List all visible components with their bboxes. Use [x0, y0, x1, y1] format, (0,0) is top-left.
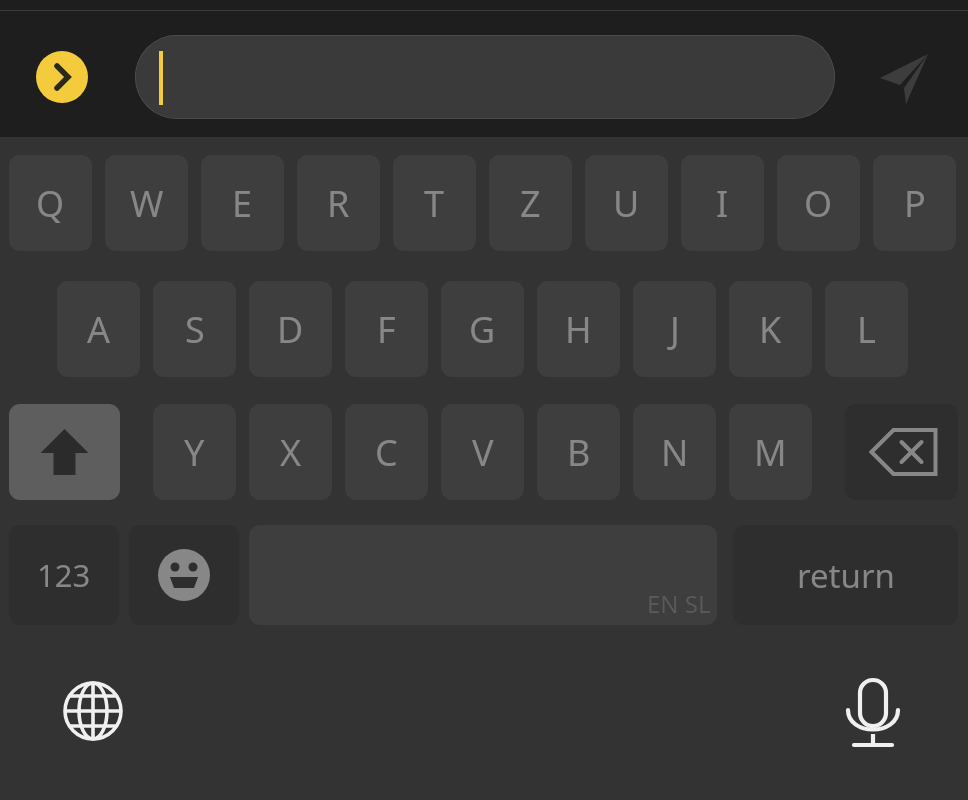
- button[interactable]: B: [537, 404, 620, 500]
- button[interactable]: Send: [866, 48, 942, 108]
- button[interactable]: Shift: [9, 404, 120, 500]
- button[interactable]: J: [633, 281, 716, 377]
- staticText: 123: [37, 554, 91, 596]
- button[interactable]: L: [825, 281, 908, 377]
- staticText: G: [469, 305, 496, 354]
- staticText: EN SL: [647, 587, 711, 620]
- staticText: E: [232, 179, 253, 228]
- button[interactable]: P: [873, 155, 956, 251]
- staticText: L: [857, 305, 876, 354]
- button[interactable]: R: [297, 155, 380, 251]
- staticText: return: [797, 553, 895, 598]
- staticText: O: [804, 179, 833, 228]
- button[interactable]: U: [585, 155, 668, 251]
- button[interactable]: Change language: [53, 671, 133, 751]
- staticText: H: [565, 305, 592, 354]
- button[interactable]: D: [249, 281, 332, 377]
- button[interactable]: O: [777, 155, 860, 251]
- button[interactable]: H: [537, 281, 620, 377]
- button[interactable]: Y: [153, 404, 236, 500]
- button[interactable]: S: [153, 281, 236, 377]
- staticText: U: [613, 179, 640, 228]
- staticText: D: [277, 305, 304, 354]
- staticText: S: [185, 305, 205, 354]
- button[interactable]: Voice input: [833, 670, 913, 752]
- button[interactable]: E: [201, 155, 284, 251]
- button[interactable]: N: [633, 404, 716, 500]
- staticText: T: [424, 179, 445, 228]
- button[interactable]: X: [249, 404, 332, 500]
- button[interactable]: A: [57, 281, 140, 377]
- button[interactable]: V: [441, 404, 524, 500]
- button[interactable]: I: [681, 155, 764, 251]
- button[interactable]: 123: [9, 525, 119, 625]
- staticText: M: [754, 428, 787, 477]
- button[interactable]: [135, 35, 835, 119]
- staticText: Q: [36, 179, 65, 228]
- button[interactable]: return: [733, 525, 958, 625]
- staticText: V: [472, 428, 494, 477]
- staticText: B: [567, 428, 591, 477]
- button[interactable]: Z: [489, 155, 572, 251]
- staticText: K: [759, 305, 782, 354]
- button[interactable]: C: [345, 404, 428, 500]
- staticText: F: [377, 305, 396, 354]
- button[interactable]: M: [729, 404, 812, 500]
- staticText: J: [670, 305, 680, 354]
- button[interactable]: Emoji: [129, 525, 239, 625]
- staticText: C: [375, 428, 398, 477]
- staticText: W: [130, 179, 164, 228]
- button[interactable]: F: [345, 281, 428, 377]
- staticText: Z: [520, 179, 541, 228]
- button[interactable]: G: [441, 281, 524, 377]
- button[interactable]: Q: [9, 155, 92, 251]
- staticText: P: [904, 179, 926, 228]
- staticText: Y: [184, 428, 205, 477]
- button[interactable]: W: [105, 155, 188, 251]
- staticText: A: [87, 305, 111, 354]
- button[interactable]: Backspace: [845, 404, 958, 500]
- button[interactable]: Expand: [36, 51, 88, 103]
- button[interactable]: T: [393, 155, 476, 251]
- staticText: R: [327, 179, 350, 228]
- staticText: X: [280, 428, 302, 477]
- staticText: N: [661, 428, 689, 477]
- button[interactable]: K: [729, 281, 812, 377]
- staticText: I: [716, 179, 729, 228]
